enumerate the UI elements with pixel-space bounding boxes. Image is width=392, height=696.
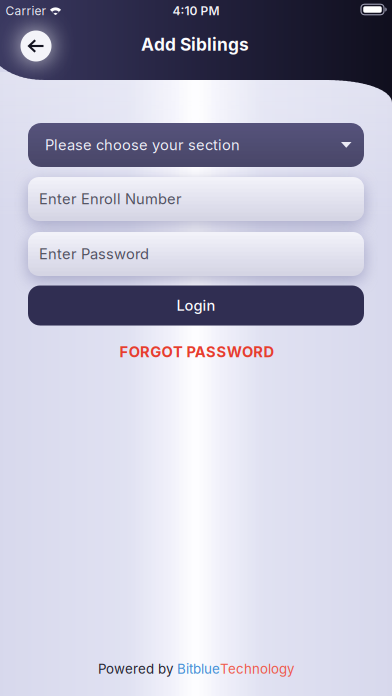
staticText: Powered by (98, 661, 177, 677)
staticText: Carrier (5, 4, 46, 18)
staticText: Login (176, 297, 215, 314)
staticText: Bitblue (177, 661, 220, 677)
staticText: Technology (220, 661, 294, 677)
staticText: Enter Password (39, 245, 149, 263)
button[interactable]: Enter Password (28, 232, 364, 276)
button[interactable]: Back (14, 24, 58, 68)
button[interactable]: Enter Enroll Number (28, 177, 364, 221)
button[interactable]: Login (28, 285, 364, 325)
button[interactable]: Please choose your section (28, 123, 364, 167)
staticText: FORGOT PASSWORD (119, 343, 275, 361)
staticText: Enter Enroll Number (39, 190, 182, 208)
button[interactable]: FORGOT PASSWORD (82, 337, 312, 367)
staticText: 4:10 PM (172, 4, 219, 18)
staticText: Please choose your section (45, 136, 240, 154)
staticText: Add Siblings (141, 34, 249, 55)
